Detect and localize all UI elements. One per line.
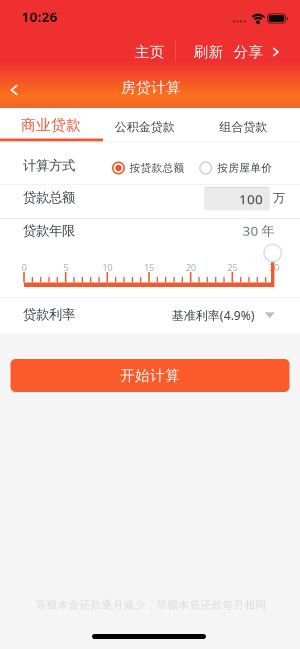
button[interactable]: 组合贷款: [193, 111, 293, 143]
staticText: 计算方式: [23, 157, 75, 174]
staticText: 30 年: [243, 222, 275, 239]
button[interactable]: 返回: [2, 76, 27, 104]
staticText: 25: [227, 261, 237, 274]
staticText: 基准利率(4.9%): [172, 307, 255, 323]
button[interactable]: 按房屋单价: [199, 161, 272, 174]
staticText: 等额本金还款逐月减少，等额本息还款每月相同: [35, 598, 266, 611]
staticText: 10:26: [21, 8, 57, 25]
staticText: 房贷计算: [121, 78, 181, 96]
staticText: 15: [144, 261, 154, 274]
staticText: 按贷款总额: [129, 161, 184, 174]
button[interactable]: 商业贷款: [1, 109, 101, 141]
staticText: 分享: [233, 43, 263, 61]
button[interactable]: 主页: [135, 43, 165, 61]
staticText: 贷款利率: [23, 306, 75, 323]
button[interactable]: 贷款总额输入框: [204, 186, 270, 210]
button[interactable]: 按贷款总额: [112, 161, 184, 174]
button[interactable]: 年限滑块: [263, 243, 282, 262]
button[interactable]: 分享: [233, 43, 279, 61]
staticText: 按房屋单价: [217, 161, 272, 174]
staticText: 万: [273, 191, 285, 205]
button[interactable]: 开始计算: [10, 359, 289, 392]
staticText: 贷款年限: [23, 222, 75, 239]
button[interactable]: 公积金贷款: [95, 111, 195, 143]
staticText: 开始计算: [120, 366, 180, 384]
button[interactable]: 刷新: [193, 43, 223, 61]
staticText: 100: [239, 190, 263, 208]
staticText: 5: [63, 261, 68, 274]
button[interactable]: 基准利率(4.9%): [172, 307, 275, 323]
staticText: 20: [186, 261, 196, 274]
staticText: 10: [102, 261, 112, 274]
staticText: 商业贷款: [21, 116, 81, 134]
staticText: 30: [269, 261, 279, 274]
staticText: 贷款总额: [23, 189, 75, 206]
staticText: 公积金贷款: [115, 120, 175, 134]
staticText: 刷新: [193, 43, 223, 61]
staticText: 组合贷款: [219, 120, 267, 134]
staticText: 0: [21, 261, 26, 274]
staticText: 主页: [135, 43, 165, 61]
